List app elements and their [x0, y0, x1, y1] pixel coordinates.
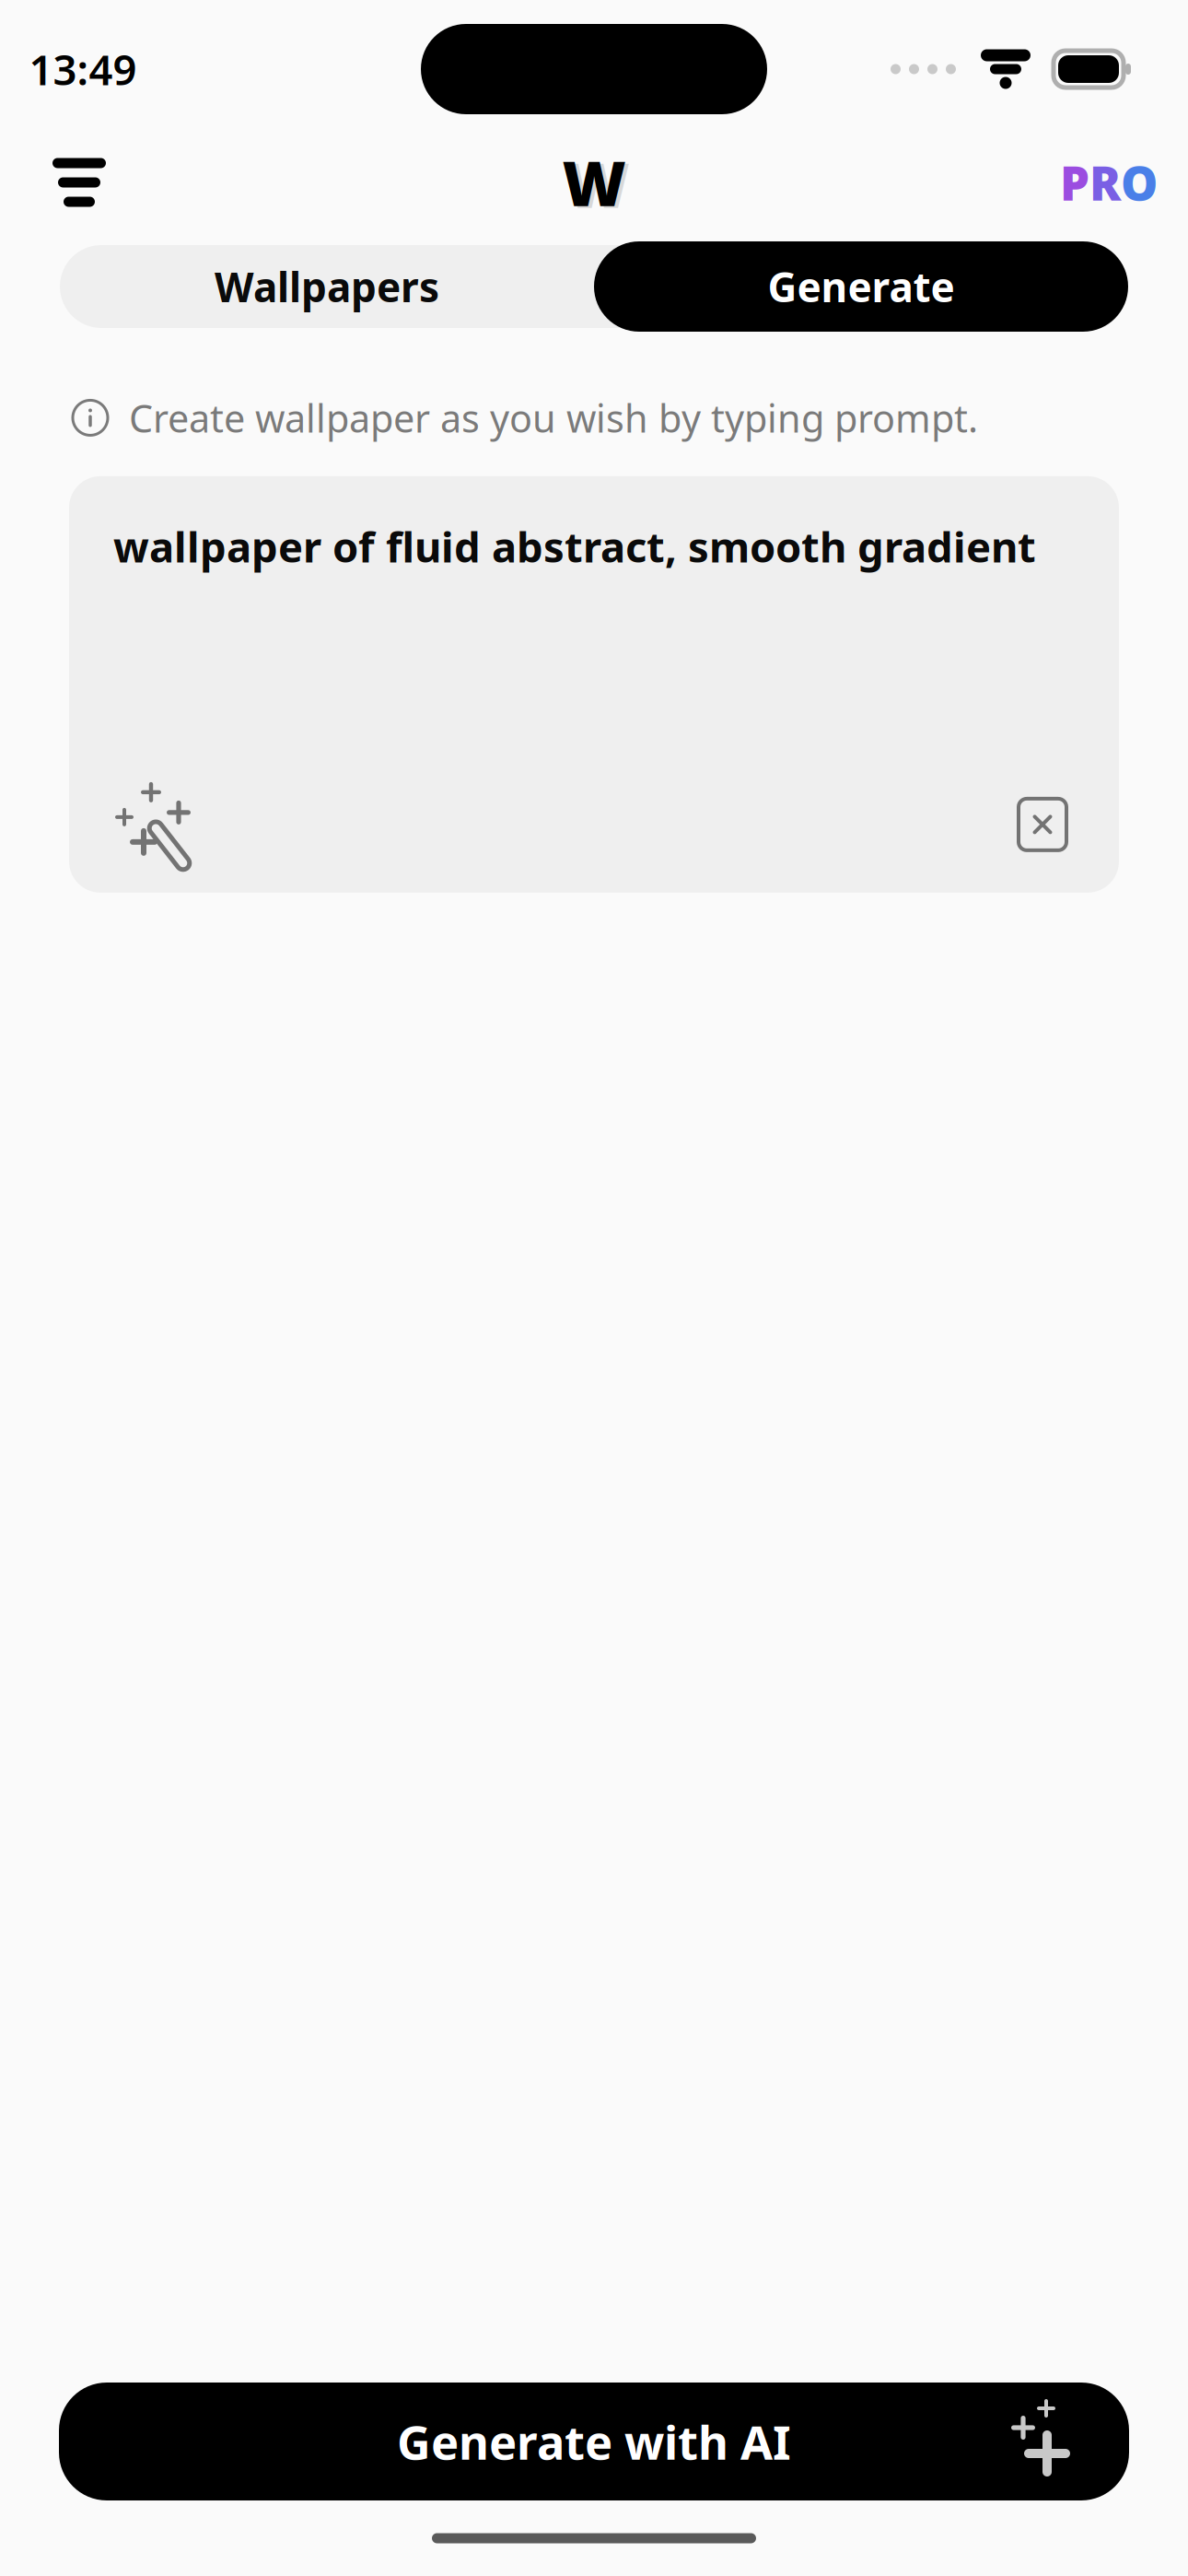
staticText: R	[1089, 151, 1121, 213]
button[interactable]: P	[1061, 140, 1157, 225]
staticText: 13:49	[29, 41, 137, 97]
button[interactable]: Generate with AI	[59, 2383, 1129, 2500]
button[interactable]: Generate	[594, 241, 1128, 332]
staticText: Wallpapers	[215, 260, 439, 313]
staticText: wallpaper of fluid abstract, smooth grad…	[113, 519, 1036, 574]
staticText: O	[1121, 151, 1158, 213]
button[interactable]: Clear prompt	[1010, 792, 1075, 857]
staticText: Generate with AI	[397, 2411, 791, 2473]
staticText: W	[562, 142, 626, 223]
staticText: Generate	[768, 260, 955, 313]
staticText: P	[1060, 151, 1089, 213]
staticText: Create wallpaper as you wish by typing p…	[129, 392, 978, 443]
staticText: W	[566, 143, 629, 225]
button[interactable]: Menu	[31, 140, 127, 225]
button[interactable]: Wallpapers	[60, 245, 594, 328]
button[interactable]: wallpaper of fluid abstract, smooth grad…	[69, 476, 1119, 893]
